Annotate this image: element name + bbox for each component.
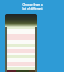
staticText: Choose from a lot of different: [22, 3, 43, 11]
